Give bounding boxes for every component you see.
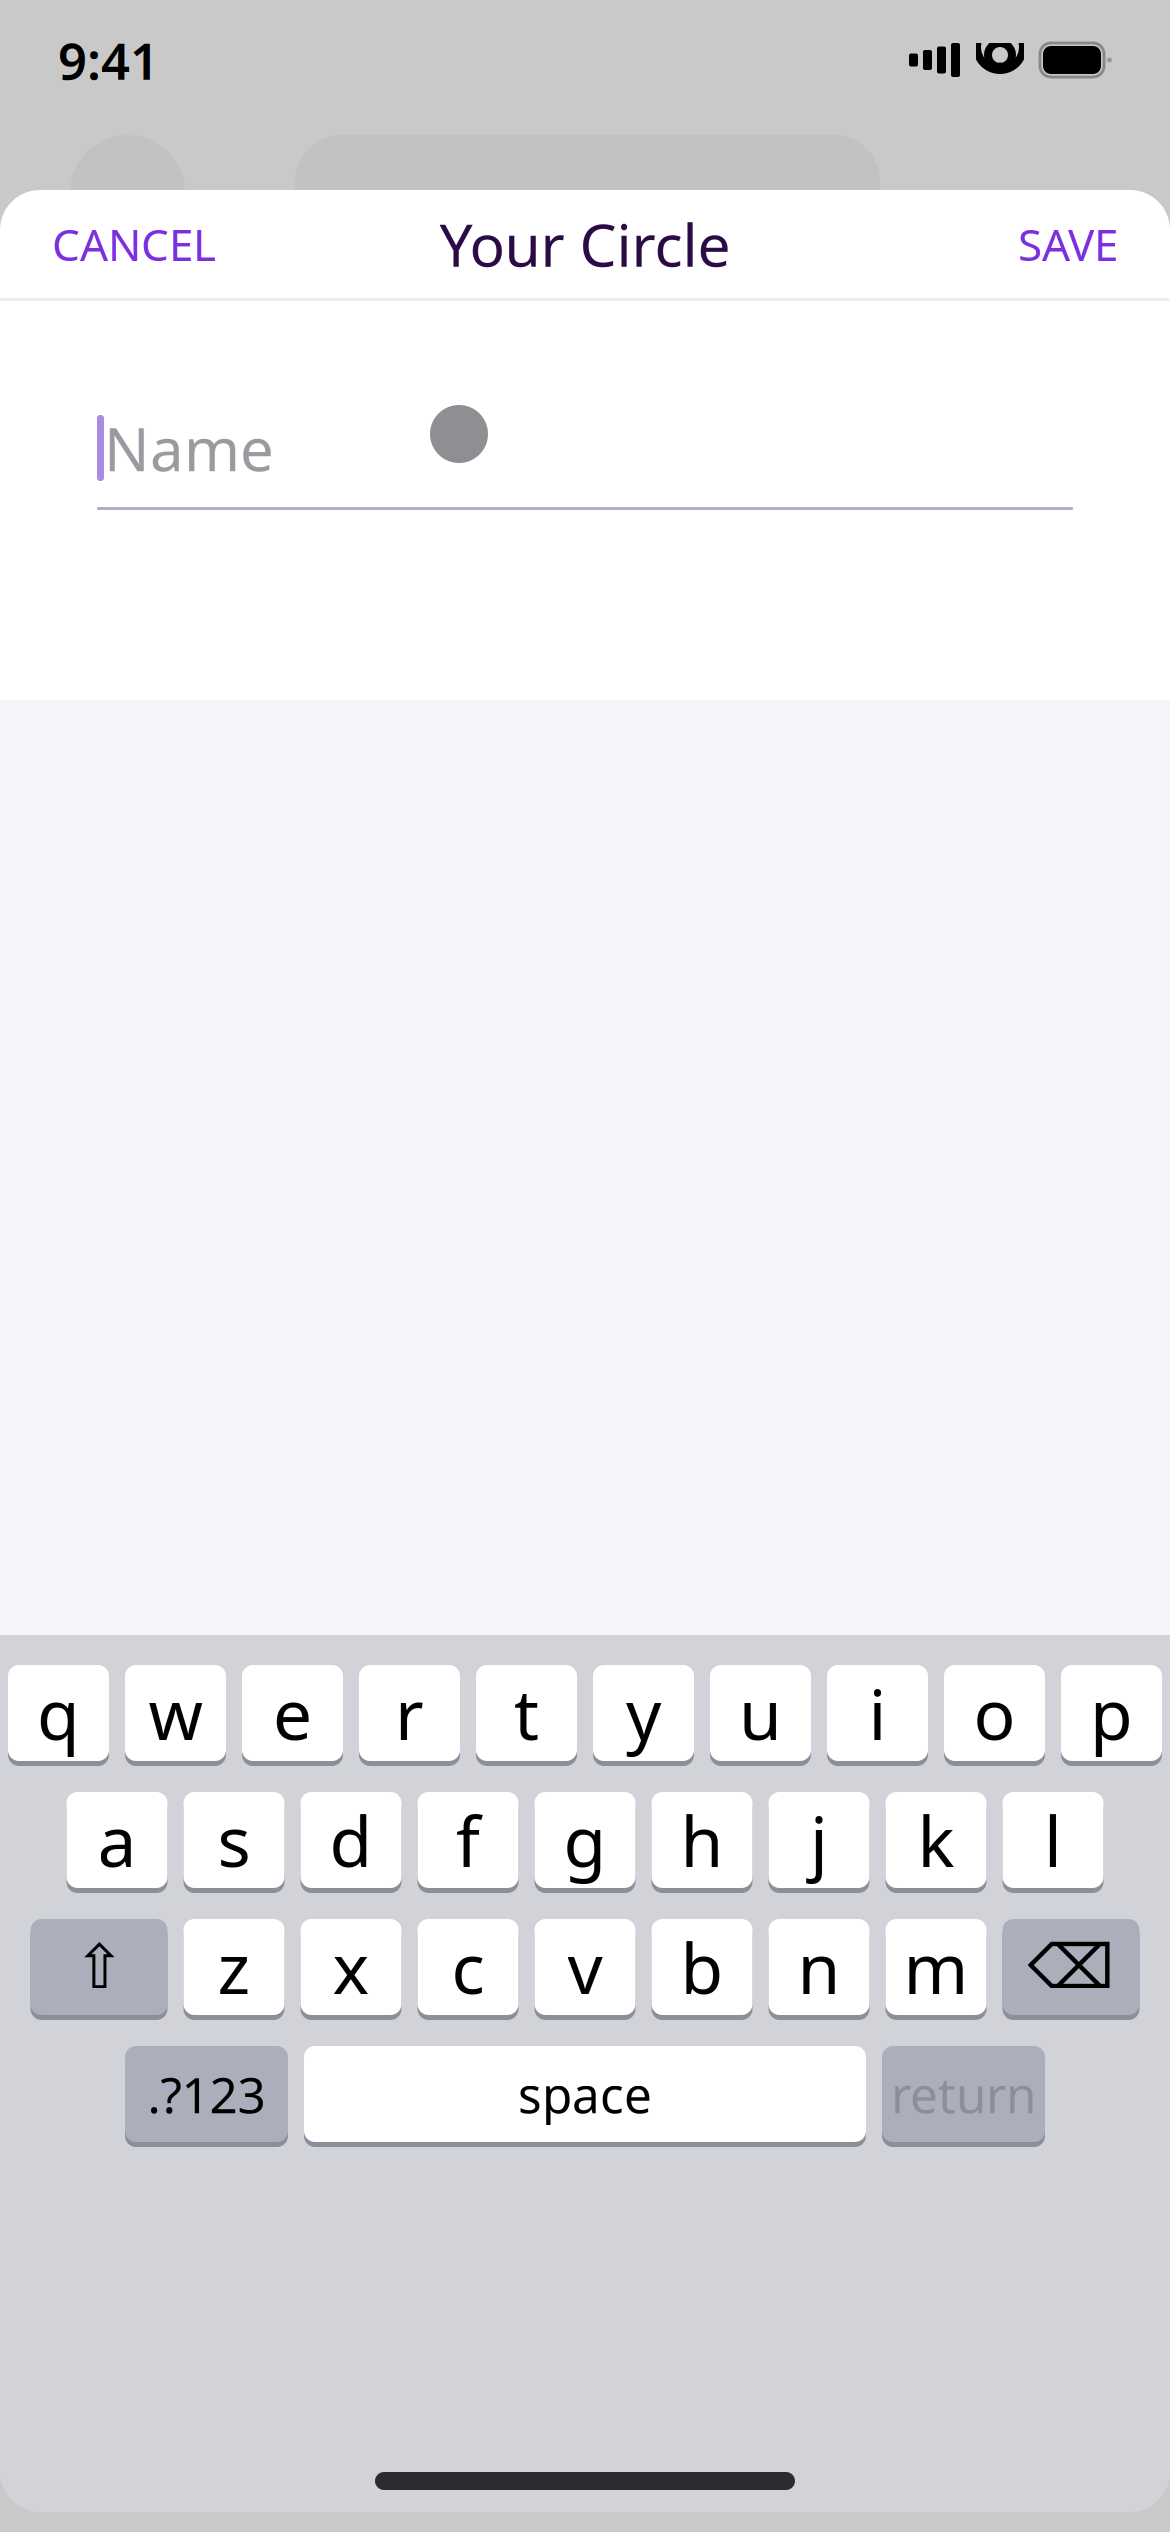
button[interactable]: h xyxy=(651,1792,752,1893)
button[interactable]: n xyxy=(768,1919,869,2020)
staticText: i xyxy=(868,1667,886,1759)
staticText: d xyxy=(329,1794,372,1886)
staticText: SAVE xyxy=(1018,215,1118,273)
button[interactable]: k xyxy=(885,1792,986,1893)
button[interactable]: b xyxy=(651,1919,752,2020)
button[interactable]: d xyxy=(300,1792,401,1893)
staticText: q xyxy=(37,1667,80,1759)
staticText: return xyxy=(891,2061,1036,2127)
button[interactable]: f xyxy=(417,1792,518,1893)
staticText: k xyxy=(917,1794,954,1886)
staticText: 9:41 xyxy=(58,26,159,94)
staticText: x xyxy=(332,1921,369,2013)
staticText: z xyxy=(217,1921,250,2013)
staticText: s xyxy=(217,1794,250,1886)
staticText: p xyxy=(1090,1667,1133,1759)
button[interactable]: return xyxy=(882,2046,1045,2147)
staticText: w xyxy=(148,1667,202,1759)
staticText: Your Circle xyxy=(439,205,730,283)
button[interactable]: CANCEL xyxy=(26,193,242,295)
button[interactable]: Shift xyxy=(30,1919,167,2020)
button[interactable]: u xyxy=(710,1665,811,1766)
button[interactable]: v xyxy=(534,1919,635,2020)
staticText: b xyxy=(680,1921,723,2013)
staticText: j xyxy=(810,1794,828,1886)
button[interactable]: w xyxy=(125,1665,226,1766)
button[interactable]: l xyxy=(1002,1792,1103,1893)
button[interactable]: Delete xyxy=(1002,1919,1139,2020)
staticText: f xyxy=(456,1794,480,1886)
button[interactable]: y xyxy=(593,1665,694,1766)
staticText: e xyxy=(273,1667,312,1759)
button[interactable]: j xyxy=(768,1792,869,1893)
button[interactable]: .?123 xyxy=(125,2046,288,2147)
staticText: space xyxy=(518,2061,652,2127)
staticText: CANCEL xyxy=(52,215,216,273)
staticText: Name xyxy=(104,408,274,488)
staticText: l xyxy=(1044,1794,1062,1886)
staticText: v xyxy=(567,1921,602,2013)
button[interactable]: m xyxy=(885,1919,986,2020)
staticText: y xyxy=(626,1667,661,1759)
staticText: o xyxy=(973,1667,1015,1759)
button[interactable]: o xyxy=(944,1665,1045,1766)
button[interactable]: i xyxy=(827,1665,928,1766)
staticText: ⇧ xyxy=(73,1932,124,2002)
staticText: c xyxy=(451,1921,484,2013)
staticText: a xyxy=(97,1794,136,1886)
button[interactable]: z xyxy=(183,1919,284,2020)
staticText: .?123 xyxy=(147,2061,265,2127)
staticText: r xyxy=(395,1667,424,1759)
staticText: m xyxy=(903,1921,968,2013)
staticText: g xyxy=(563,1794,606,1886)
button[interactable]: q xyxy=(8,1665,109,1766)
button[interactable]: space xyxy=(304,2046,866,2147)
staticText: n xyxy=(797,1921,840,2013)
staticText: ⌫ xyxy=(1027,1932,1114,2002)
staticText: t xyxy=(514,1667,539,1759)
button[interactable]: SAVE xyxy=(992,193,1144,295)
button[interactable]: r xyxy=(359,1665,460,1766)
button[interactable]: e xyxy=(242,1665,343,1766)
button[interactable]: g xyxy=(534,1792,635,1893)
button[interactable]: t xyxy=(476,1665,577,1766)
button[interactable]: p xyxy=(1061,1665,1162,1766)
staticText: h xyxy=(680,1794,723,1886)
staticText: u xyxy=(739,1667,782,1759)
button[interactable]: c xyxy=(417,1919,518,2020)
button[interactable]: s xyxy=(183,1792,284,1893)
button[interactable]: a xyxy=(66,1792,167,1893)
button[interactable]: x xyxy=(300,1919,401,2020)
